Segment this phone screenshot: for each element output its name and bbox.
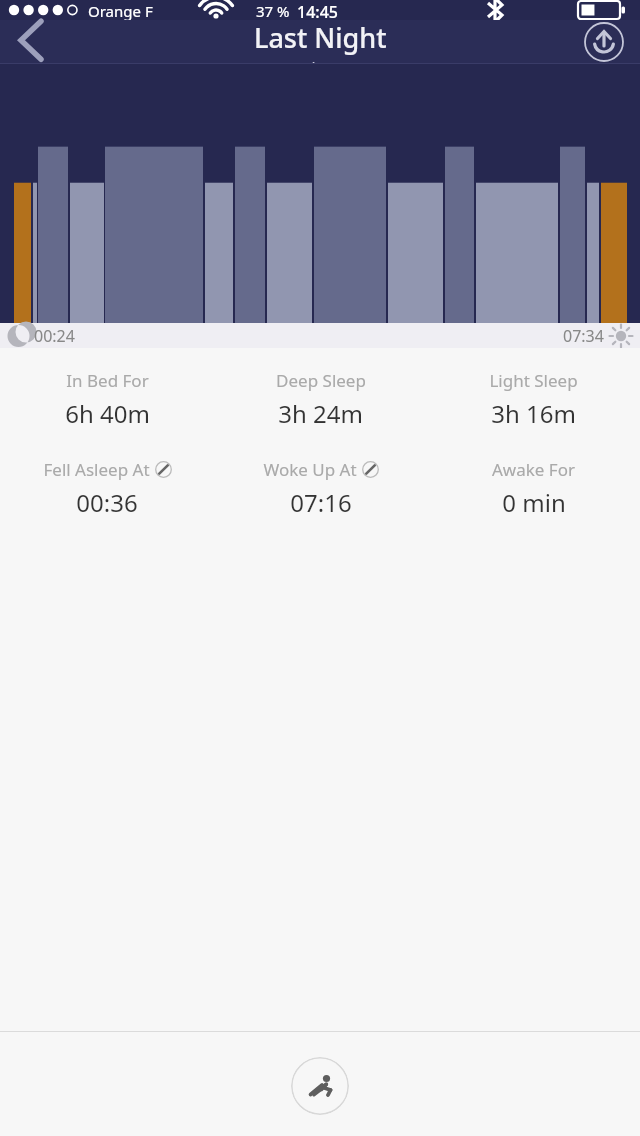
staticText: 0 min: [502, 486, 566, 519]
button[interactable]: Back: [0, 20, 60, 64]
staticText: In Bed For: [66, 369, 149, 392]
staticText: Fell Asleep At: [43, 458, 150, 481]
staticText: Woke Up At: [263, 458, 357, 481]
staticText: Orange F: [88, 1, 153, 21]
staticText: 37 %: [256, 1, 290, 21]
staticText: 00:36: [76, 486, 138, 519]
staticText: 07:34: [563, 325, 604, 347]
staticText: Awake For: [492, 458, 575, 481]
button[interactable]: Share: [582, 20, 626, 64]
staticText: 6h 40m: [65, 397, 150, 430]
button[interactable]: Woke Up At: [214, 458, 427, 519]
staticText: 14:45: [297, 1, 338, 21]
staticText: 3h 16m: [491, 397, 576, 430]
staticText: Deep Sleep: [276, 369, 366, 392]
staticText: 07:16: [290, 486, 352, 519]
staticText: Last Night: [254, 19, 387, 56]
staticText: Synced at 14:42: [267, 57, 374, 63]
staticText: Light Sleep: [489, 369, 578, 392]
button[interactable]: Fell Asleep At: [0, 458, 214, 519]
staticText: 00:24: [34, 325, 75, 347]
button[interactable]: Start activity: [291, 1057, 349, 1115]
staticText: 3h 24m: [278, 397, 363, 430]
